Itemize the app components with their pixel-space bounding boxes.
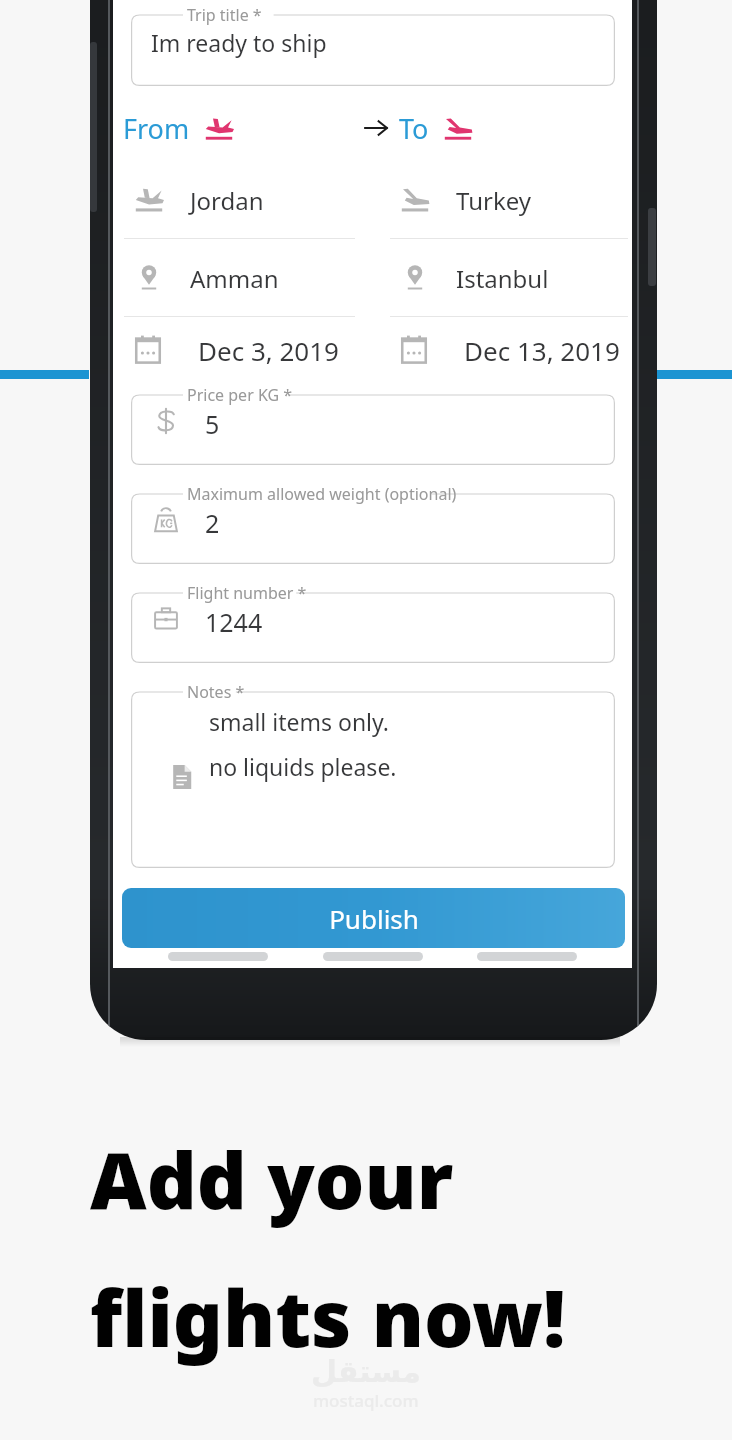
staticText: Dec 3, 2019	[198, 333, 339, 368]
button[interactable]: Amman	[124, 243, 355, 321]
staticText: flights now!	[90, 1264, 566, 1370]
staticText: To	[399, 110, 429, 147]
staticText: Dec 13, 2019	[464, 333, 620, 368]
staticText: Flight number *	[187, 582, 307, 604]
button[interactable]: Publish	[122, 888, 625, 948]
staticText: mostaql.com	[313, 1389, 419, 1412]
staticText: 2	[205, 506, 220, 540]
button[interactable]: Navigation item	[323, 952, 423, 961]
staticText: 5	[205, 407, 220, 441]
button[interactable]: Price per KG *	[131, 385, 615, 465]
staticText: Add your	[90, 1126, 454, 1232]
button[interactable]: Dec 3, 2019	[124, 318, 355, 382]
button[interactable]: Navigation item	[168, 952, 268, 961]
staticText: Turkey	[456, 184, 531, 217]
button[interactable]: Jordan	[124, 165, 355, 243]
staticText: Price per KG *	[187, 384, 293, 406]
staticText: Trip title *	[187, 4, 262, 26]
button[interactable]: From	[123, 110, 363, 147]
staticText: 1244	[205, 605, 263, 639]
button[interactable]: Turkey	[390, 165, 628, 243]
staticText: Notes *	[187, 681, 245, 703]
button[interactable]: Navigation item	[477, 952, 577, 961]
button[interactable]: Notes *	[131, 682, 615, 868]
other: Direction	[363, 115, 389, 141]
button[interactable]: To	[399, 110, 473, 147]
button[interactable]: Dec 13, 2019	[390, 318, 628, 382]
staticText: small items only.	[209, 706, 390, 737]
staticText: Jordan	[190, 184, 264, 217]
button[interactable]: Maximum allowed weight (optional)	[131, 484, 615, 564]
button[interactable]: Trip title *	[131, 5, 615, 86]
button[interactable]: Flight number *	[131, 583, 615, 663]
staticText: Amman	[190, 262, 279, 295]
staticText: From	[123, 110, 190, 147]
staticText: Publish	[329, 901, 419, 936]
staticText: Im ready to ship	[151, 27, 327, 58]
staticText: مستقل	[311, 1354, 421, 1389]
staticText: Istanbul	[456, 262, 549, 295]
button[interactable]: Istanbul	[390, 243, 628, 321]
staticText: Maximum allowed weight (optional)	[187, 483, 457, 505]
staticText: no liquids please.	[209, 751, 397, 782]
